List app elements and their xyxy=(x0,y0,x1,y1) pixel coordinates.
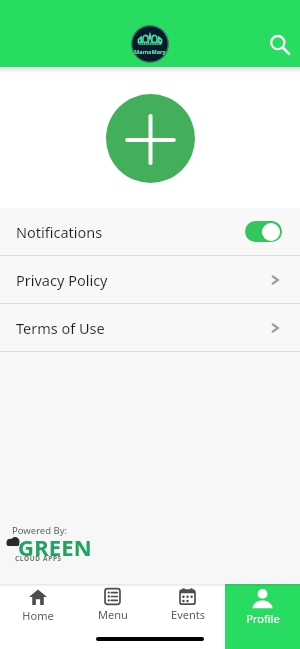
button[interactable]: Search xyxy=(261,26,297,62)
button[interactable]: Notifications xyxy=(0,208,300,255)
staticText: Privacy Policy xyxy=(16,270,108,290)
staticText: Home xyxy=(22,608,54,623)
button[interactable]: Home xyxy=(0,584,75,649)
button[interactable]: Events xyxy=(150,584,225,649)
staticText: GREEN xyxy=(18,532,92,562)
button[interactable]: Notifications toggle xyxy=(245,221,282,242)
button[interactable]: Profile xyxy=(225,584,300,649)
staticText: MamaMary xyxy=(134,48,166,56)
button[interactable]: Terms of Use xyxy=(0,304,300,351)
button[interactable]: Menu xyxy=(75,584,150,649)
staticText: Profile xyxy=(246,611,280,626)
staticText: Notifications xyxy=(16,222,103,242)
button[interactable]: Add xyxy=(106,94,195,183)
button[interactable]: Privacy Policy xyxy=(0,256,300,303)
staticText: Powered By: xyxy=(12,524,68,537)
staticText: Events xyxy=(171,607,205,622)
staticText: Menu xyxy=(98,607,128,622)
staticText: Terms of Use xyxy=(16,318,105,338)
staticText: CLOUD APPS xyxy=(15,554,62,563)
